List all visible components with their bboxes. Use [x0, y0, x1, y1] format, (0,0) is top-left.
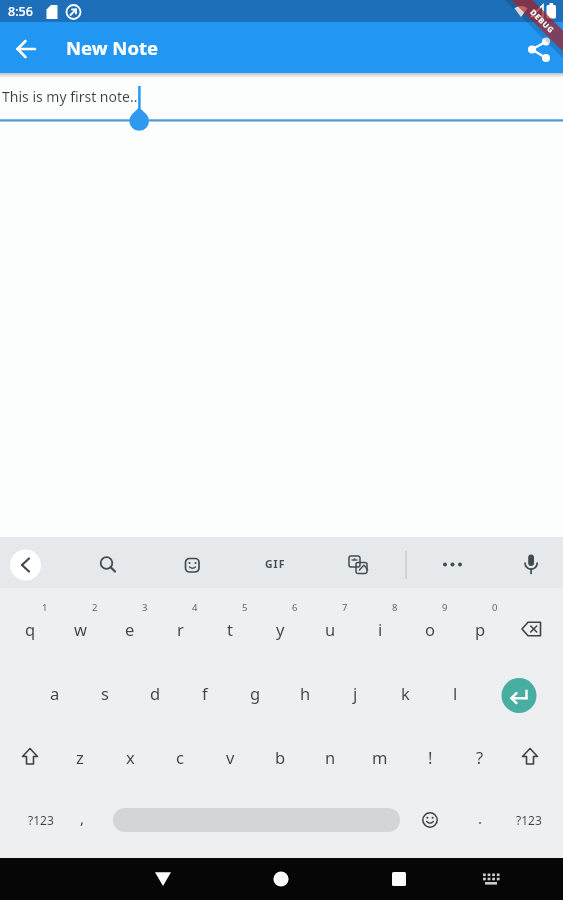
staticText: , [80, 808, 85, 828]
button[interactable]: e [106, 601, 154, 657]
staticText: ?123 [516, 812, 542, 828]
button[interactable]: g [231, 665, 279, 721]
staticText: u [325, 618, 336, 640]
staticText: h [300, 682, 311, 704]
button[interactable]: z [56, 729, 104, 785]
button[interactable]: j [331, 665, 379, 721]
button[interactable]: . [460, 792, 500, 844]
staticText: a [50, 682, 60, 704]
staticText: ! [428, 746, 433, 768]
staticText: c [176, 746, 184, 768]
staticText: l [453, 682, 458, 704]
button[interactable] [113, 808, 400, 832]
button[interactable]: x [106, 729, 154, 785]
button[interactable]: GIF [250, 539, 300, 589]
staticText: v [226, 746, 235, 768]
button[interactable]: a [31, 665, 79, 721]
button[interactable]: ? [456, 729, 504, 785]
button[interactable] [6, 729, 54, 785]
staticText: 6 [292, 601, 298, 614]
button[interactable]: k [381, 665, 429, 721]
staticText: 1 [42, 601, 48, 614]
button[interactable] [406, 794, 454, 846]
staticText: New Note [66, 35, 159, 60]
staticText: t [227, 618, 233, 640]
button[interactable] [92, 549, 124, 581]
button[interactable] [375, 858, 423, 900]
staticText: 2 [92, 601, 98, 614]
staticText: m [372, 746, 388, 768]
button[interactable]: ?123 [499, 794, 559, 846]
staticText: 9 [442, 601, 448, 614]
staticText: n [325, 746, 336, 768]
staticText: This is my first note.. [2, 87, 138, 106]
button[interactable]: , [62, 792, 102, 844]
staticText: q [25, 618, 36, 640]
staticText: 3 [142, 601, 148, 614]
button[interactable] [521, 31, 557, 67]
button[interactable]: q [6, 601, 54, 657]
staticText: o [425, 618, 435, 640]
staticText: 0 [492, 601, 498, 614]
button[interactable]: New Note [66, 22, 286, 73]
staticText: ?123 [28, 812, 54, 828]
button[interactable]: m [356, 729, 404, 785]
button[interactable]: b [256, 729, 304, 785]
button[interactable] [10, 550, 41, 581]
button[interactable]: w [56, 601, 104, 657]
staticText: d [150, 682, 161, 704]
staticText: b [275, 746, 286, 768]
button[interactable]: v [206, 729, 254, 785]
staticText: p [475, 618, 486, 640]
staticText: 8 [392, 601, 398, 614]
button[interactable]: p [456, 601, 504, 657]
staticText: 4 [192, 601, 198, 614]
staticText: s [101, 682, 109, 704]
button[interactable] [139, 858, 187, 900]
staticText: DEBUG [528, 7, 557, 35]
button[interactable] [469, 858, 513, 900]
staticText: 7 [342, 601, 348, 614]
button[interactable]: This is my first note.. [2, 73, 402, 120]
staticText: x [126, 746, 135, 768]
button[interactable]: ?123 [11, 794, 71, 846]
staticText: z [76, 746, 84, 768]
button[interactable]: t [206, 601, 254, 657]
button[interactable]: s [81, 665, 129, 721]
button[interactable] [8, 31, 44, 67]
staticText: GIF [265, 557, 286, 571]
button[interactable]: o [406, 601, 454, 657]
button[interactable] [506, 729, 554, 785]
button[interactable] [495, 671, 543, 719]
button[interactable]: DEBUG [480, 0, 563, 83]
button[interactable]: ! [406, 729, 454, 785]
button[interactable] [176, 549, 208, 581]
button[interactable]: c [156, 729, 204, 785]
staticText: 5 [242, 601, 248, 614]
staticText: e [125, 618, 135, 640]
button[interactable]: n [306, 729, 354, 785]
button[interactable]: y [256, 601, 304, 657]
staticText: j [353, 682, 358, 704]
button[interactable]: h [281, 665, 329, 721]
button[interactable] [436, 549, 468, 581]
button[interactable]: u [306, 601, 354, 657]
button[interactable] [515, 549, 547, 581]
button[interactable] [507, 601, 555, 657]
button[interactable]: l [431, 665, 479, 721]
button[interactable] [257, 858, 305, 900]
button[interactable]: f [181, 665, 229, 721]
button[interactable]: r [156, 601, 204, 657]
staticText: ? [476, 746, 484, 768]
staticText: . [478, 808, 483, 828]
staticText: w [74, 618, 87, 640]
staticText: y [276, 618, 285, 640]
staticText: 8:56 [8, 3, 33, 20]
button[interactable] [341, 549, 373, 581]
button[interactable]: i [356, 601, 404, 657]
staticText: r [177, 618, 184, 640]
button[interactable]: d [131, 665, 179, 721]
staticText: i [378, 618, 383, 640]
staticText: k [401, 682, 410, 704]
staticText: f [202, 682, 208, 704]
